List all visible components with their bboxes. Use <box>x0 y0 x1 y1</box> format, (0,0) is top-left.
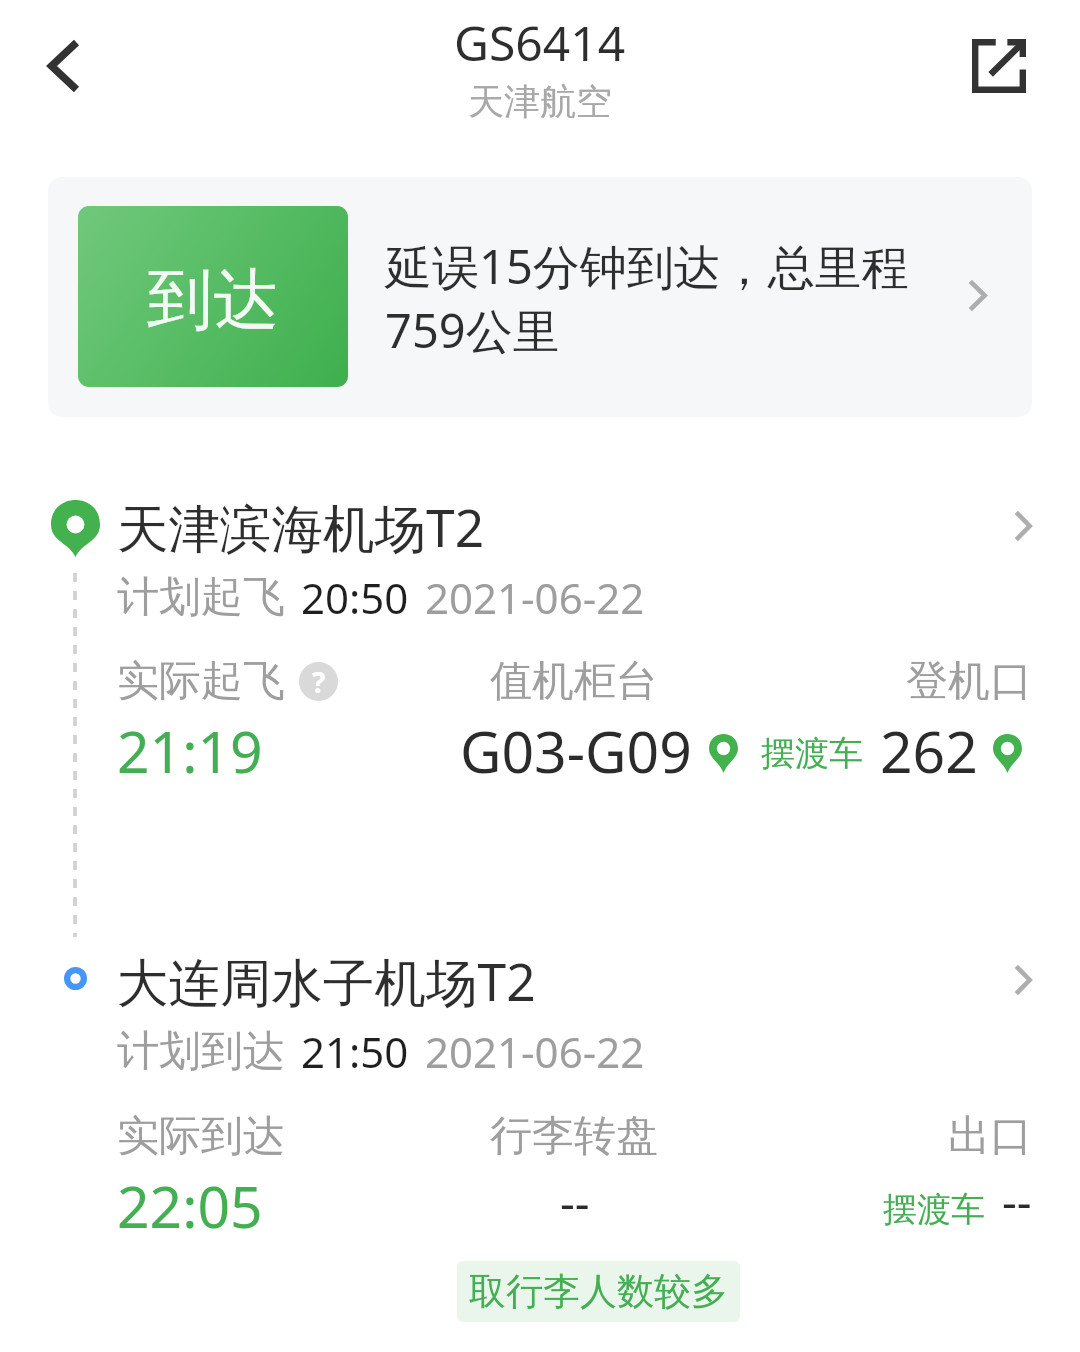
staticText: 延误15分钟到达，总里程759公里 <box>385 234 945 362</box>
staticText: 计划到达 <box>117 1025 285 1078</box>
staticText: 登机口 <box>906 655 1032 708</box>
button[interactable]: 天津滨海机场T2 <box>40 484 1040 570</box>
staticText: 2021-06-22 <box>425 1023 645 1080</box>
staticText: 实际到达 <box>117 1110 285 1163</box>
staticText: 实际起飞 <box>117 655 285 708</box>
button[interactable]: Share <box>945 12 1053 120</box>
staticText: 20:50 <box>301 569 409 626</box>
staticText: 天津航空 <box>468 79 612 124</box>
button[interactable]: Back <box>18 20 110 112</box>
button[interactable]: 大连周水子机场T2 <box>40 938 1040 1024</box>
staticText: 值机柜台 <box>490 655 658 708</box>
staticText: 出口 <box>948 1110 1032 1163</box>
staticText: ? <box>312 663 326 701</box>
staticText: 21:50 <box>301 1023 409 1080</box>
staticText: 摆渡车 <box>883 1188 985 1231</box>
staticText: -- <box>560 1170 590 1232</box>
button[interactable]: 取行李人数较多 <box>457 1261 740 1322</box>
button[interactable]: 到达 <box>48 177 1032 417</box>
staticText: 到达 <box>147 258 279 341</box>
staticText: 262 <box>880 712 978 774</box>
staticText: GS6414 <box>454 10 626 75</box>
staticText: 摆渡车 <box>761 732 863 775</box>
staticText: 大连周水子机场T2 <box>117 946 536 1016</box>
staticText: G03-G09 <box>460 712 692 774</box>
staticText: 行李转盘 <box>490 1110 658 1163</box>
staticText: -- <box>1002 1169 1032 1231</box>
staticText: 21:19 <box>117 712 263 774</box>
staticText: 22:05 <box>117 1167 263 1229</box>
staticText: 天津滨海机场T2 <box>117 492 485 562</box>
staticText: 2021-06-22 <box>425 569 645 626</box>
button[interactable]: Help <box>299 662 338 701</box>
staticText: 计划起飞 <box>117 571 285 624</box>
staticText: 取行李人数较多 <box>469 1268 728 1315</box>
